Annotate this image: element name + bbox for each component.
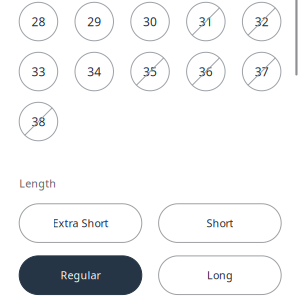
- button[interactable]: Short: [159, 204, 281, 242]
- button[interactable]: 36: [187, 52, 225, 91]
- button[interactable]: Long: [159, 256, 281, 295]
- button[interactable]: 28: [19, 2, 58, 41]
- staticText: Long: [207, 268, 233, 282]
- staticText: 29: [87, 14, 101, 29]
- staticText: 35: [143, 64, 157, 79]
- staticText: 31: [199, 14, 213, 29]
- staticText: 32: [255, 14, 269, 29]
- button[interactable]: Regular: [19, 256, 142, 295]
- staticText: 38: [31, 114, 45, 129]
- button[interactable]: 30: [131, 2, 169, 41]
- staticText: Length: [19, 176, 56, 190]
- button[interactable]: 31: [187, 2, 225, 41]
- staticText: Extra Short: [52, 216, 108, 230]
- button[interactable]: 33: [19, 52, 58, 91]
- staticText: 37: [255, 64, 269, 79]
- button[interactable]: 32: [242, 2, 281, 41]
- staticText: 28: [31, 14, 45, 29]
- staticText: 36: [199, 64, 213, 79]
- button[interactable]: 35: [131, 52, 169, 91]
- staticText: 33: [31, 64, 45, 79]
- staticText: 34: [87, 64, 101, 79]
- staticText: Regular: [60, 268, 100, 282]
- button[interactable]: 29: [75, 2, 113, 41]
- button[interactable]: Extra Short: [19, 204, 142, 242]
- staticText: Short: [206, 216, 233, 230]
- button[interactable]: 37: [242, 52, 281, 91]
- button[interactable]: 34: [75, 52, 113, 91]
- staticText: 30: [143, 14, 157, 29]
- button[interactable]: 38: [19, 102, 58, 141]
